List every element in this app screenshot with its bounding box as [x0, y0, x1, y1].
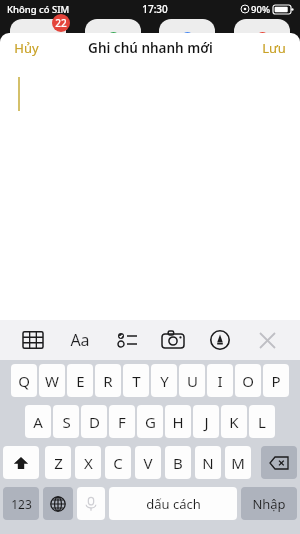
staticText: K [229, 412, 239, 432]
button[interactable]: B [165, 446, 191, 479]
staticText: J [204, 412, 209, 432]
staticText: E [76, 371, 85, 391]
button[interactable]: dấu cách [109, 487, 237, 520]
staticText: R [103, 371, 113, 391]
button[interactable]: N [195, 446, 221, 479]
staticText: T [132, 371, 141, 391]
button[interactable]: E [67, 364, 93, 397]
staticText: 22 [55, 16, 67, 30]
button[interactable]: Q [11, 364, 37, 397]
button[interactable]: M [225, 446, 251, 479]
staticText: P [271, 371, 281, 391]
button[interactable]: F [109, 405, 135, 438]
button[interactable]: Camera [158, 325, 188, 355]
button[interactable]: I [207, 364, 233, 397]
button[interactable]: R [95, 364, 121, 397]
button[interactable]: 123 [3, 487, 39, 520]
button[interactable]: Markup [205, 325, 235, 355]
staticText: Ghi chú nhanh mới [88, 39, 213, 57]
button[interactable] [0, 63, 300, 534]
button[interactable]: O [235, 364, 261, 397]
staticText: B [173, 453, 183, 473]
button[interactable]: S [53, 405, 79, 438]
button[interactable]: X [75, 446, 101, 479]
staticText: 123 [11, 496, 32, 512]
staticText: H [172, 412, 184, 432]
staticText: C [113, 453, 123, 473]
staticText: Hủy [14, 39, 39, 57]
button[interactable]: L [249, 405, 275, 438]
staticText: Q [18, 371, 30, 391]
button[interactable]: Y [151, 364, 177, 397]
button[interactable]: Text format [65, 325, 95, 355]
staticText: 90% [251, 3, 270, 16]
staticText: S [62, 412, 71, 432]
button[interactable]: P [263, 364, 289, 397]
button[interactable]: Change keyboard [43, 487, 73, 520]
button[interactable]: Hủy [6, 35, 47, 61]
button[interactable]: Close keyboard [252, 325, 282, 355]
staticText: N [202, 453, 214, 473]
button[interactable]: Lưu [254, 35, 294, 61]
button[interactable]: A [25, 405, 51, 438]
staticText: D [89, 412, 100, 432]
staticText: 17:30 [142, 2, 168, 16]
staticText: W [45, 371, 59, 391]
staticText: U [187, 371, 198, 391]
staticText: Lưu [262, 39, 286, 57]
staticText: M [231, 453, 245, 473]
staticText: X [84, 453, 93, 473]
staticText: G [145, 412, 156, 432]
button[interactable]: U [179, 364, 205, 397]
button[interactable]: D [81, 405, 107, 438]
staticText: Aa [70, 329, 90, 351]
staticText: L [258, 412, 266, 432]
button[interactable]: Table [18, 325, 48, 355]
button[interactable]: K [221, 405, 247, 438]
staticText: Z [54, 453, 63, 473]
staticText: F [118, 412, 126, 432]
button[interactable]: Checklist [112, 325, 142, 355]
staticText: A [33, 412, 43, 432]
button[interactable]: J [193, 405, 219, 438]
button[interactable]: Z [45, 446, 71, 479]
button[interactable]: G [137, 405, 163, 438]
button[interactable]: Dictate [77, 487, 105, 520]
button[interactable]: Shift [3, 446, 39, 479]
button[interactable]: Backspace [261, 446, 297, 479]
staticText: I [217, 371, 223, 391]
staticText: Không có SIM [7, 3, 70, 16]
button[interactable]: T [123, 364, 149, 397]
staticText: V [143, 453, 153, 473]
button[interactable]: W [39, 364, 65, 397]
staticText: Y [160, 371, 169, 391]
button[interactable]: C [105, 446, 131, 479]
button[interactable]: H [165, 405, 191, 438]
button[interactable]: V [135, 446, 161, 479]
staticText: Nhập [252, 495, 286, 513]
button[interactable]: Nhập [241, 487, 297, 520]
staticText: O [242, 371, 254, 391]
staticText: dấu cách [146, 495, 201, 513]
